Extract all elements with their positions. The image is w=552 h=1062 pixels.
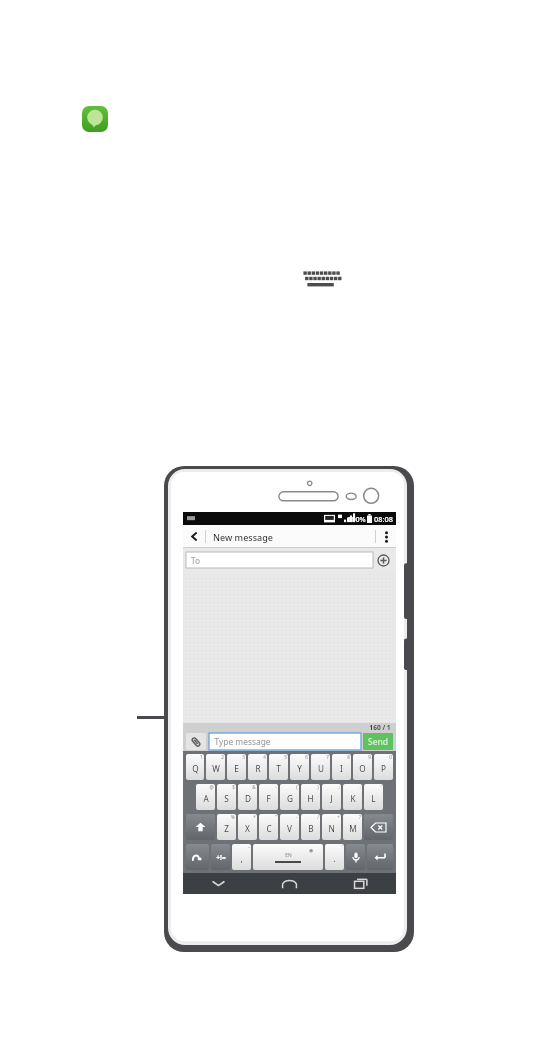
button[interactable]: $	[217, 784, 236, 810]
staticText: F	[266, 793, 271, 804]
button[interactable]: +	[322, 814, 341, 840]
button[interactable]: 0	[374, 754, 393, 780]
button[interactable]: *	[238, 814, 257, 840]
button[interactable]: '	[325, 844, 344, 870]
staticText: E	[234, 763, 239, 774]
staticText: $	[232, 784, 235, 790]
staticText: +	[337, 814, 340, 820]
staticText: /	[317, 814, 319, 820]
button[interactable]: Swipe input	[186, 844, 209, 870]
staticText: '	[380, 784, 382, 790]
staticText: -	[248, 844, 250, 850]
button[interactable]: Messaging app	[82, 106, 108, 132]
button[interactable]: 1	[186, 754, 204, 780]
button[interactable]: 9	[353, 754, 372, 780]
button[interactable]: Back	[183, 525, 205, 548]
staticText: 5	[284, 754, 287, 760]
staticText: G	[287, 793, 293, 804]
button[interactable]: Backspace	[364, 814, 393, 840]
button[interactable]: ?	[343, 814, 362, 840]
button[interactable]: Recent apps	[325, 873, 396, 894]
staticText: L	[371, 793, 376, 804]
button[interactable]: ;	[322, 784, 341, 810]
staticText: Type message	[214, 736, 271, 747]
button[interactable]: Symbols	[211, 844, 230, 870]
button[interactable]: (	[280, 784, 299, 810]
staticText: Y	[297, 763, 302, 774]
staticText: &	[252, 784, 256, 790]
staticText: *	[253, 814, 256, 820]
button[interactable]: Type message	[209, 733, 361, 750]
button[interactable]: Enter	[367, 844, 393, 870]
staticText: P	[381, 763, 386, 774]
staticText: J	[330, 793, 333, 804]
button[interactable]: %	[217, 814, 236, 840]
staticText: )	[317, 784, 319, 790]
staticText: Z	[224, 823, 229, 834]
staticText: (	[296, 784, 298, 790]
button[interactable]: Keyboard	[301, 269, 341, 289]
button[interactable]: :	[343, 784, 362, 810]
button[interactable]: 4	[248, 754, 267, 780]
staticText: ,	[240, 853, 243, 864]
button[interactable]: Attach	[186, 733, 206, 750]
staticText: 8	[347, 754, 350, 760]
button[interactable]: 5	[269, 754, 288, 780]
staticText: +!=	[216, 853, 226, 862]
staticText: EN	[285, 852, 292, 859]
staticText: D	[245, 793, 251, 804]
staticText: X	[245, 823, 250, 834]
button[interactable]: '	[364, 784, 383, 810]
staticText: 08:08	[374, 514, 393, 524]
button[interactable]: )	[301, 784, 320, 810]
staticText: M	[349, 823, 357, 834]
staticText: "	[275, 814, 277, 820]
button[interactable]: 3	[227, 754, 246, 780]
staticText: 100%	[347, 514, 366, 524]
staticText: 3	[242, 754, 245, 760]
staticText: 2	[221, 754, 224, 760]
staticText: 1	[200, 754, 203, 760]
button[interactable]: -	[280, 814, 299, 840]
staticText: 9	[368, 754, 371, 760]
staticText: To	[191, 555, 200, 566]
staticText: S	[224, 793, 229, 804]
button[interactable]: Hide keyboard	[183, 873, 254, 894]
staticText: :	[359, 784, 361, 790]
staticText: .	[333, 853, 336, 864]
staticText: 6	[305, 754, 308, 760]
staticText: 0	[389, 754, 392, 760]
button[interactable]: -	[232, 844, 251, 870]
button[interactable]: Shift	[186, 814, 215, 840]
staticText: A	[203, 793, 209, 804]
button[interactable]: 6	[290, 754, 309, 780]
button[interactable]: @	[196, 784, 215, 810]
button[interactable]: More options	[376, 525, 396, 548]
staticText: -	[296, 814, 298, 820]
button[interactable]: Send	[363, 733, 393, 750]
staticText: T	[276, 763, 281, 774]
button[interactable]: To	[186, 552, 373, 568]
staticText: B	[308, 823, 314, 834]
button[interactable]: EN	[253, 844, 323, 870]
staticText: New message	[213, 531, 273, 543]
button[interactable]: /	[301, 814, 320, 840]
button[interactable]: Home	[254, 873, 325, 894]
staticText: U	[318, 763, 324, 774]
button[interactable]: -	[259, 784, 278, 810]
staticText: V	[287, 823, 292, 834]
staticText: O	[359, 763, 366, 774]
staticText: %	[231, 814, 235, 820]
staticText: '	[341, 844, 343, 850]
button[interactable]: 8	[332, 754, 351, 780]
button[interactable]: Voice input	[346, 844, 365, 870]
staticText: 4	[263, 754, 266, 760]
staticText: N	[328, 823, 335, 834]
button[interactable]: "	[259, 814, 278, 840]
button[interactable]: 2	[206, 754, 225, 780]
button[interactable]: 7	[311, 754, 330, 780]
staticText: 7	[326, 754, 329, 760]
button[interactable]: Add recipient	[373, 550, 393, 570]
button[interactable]: &	[238, 784, 257, 810]
staticText: ;	[338, 784, 340, 790]
